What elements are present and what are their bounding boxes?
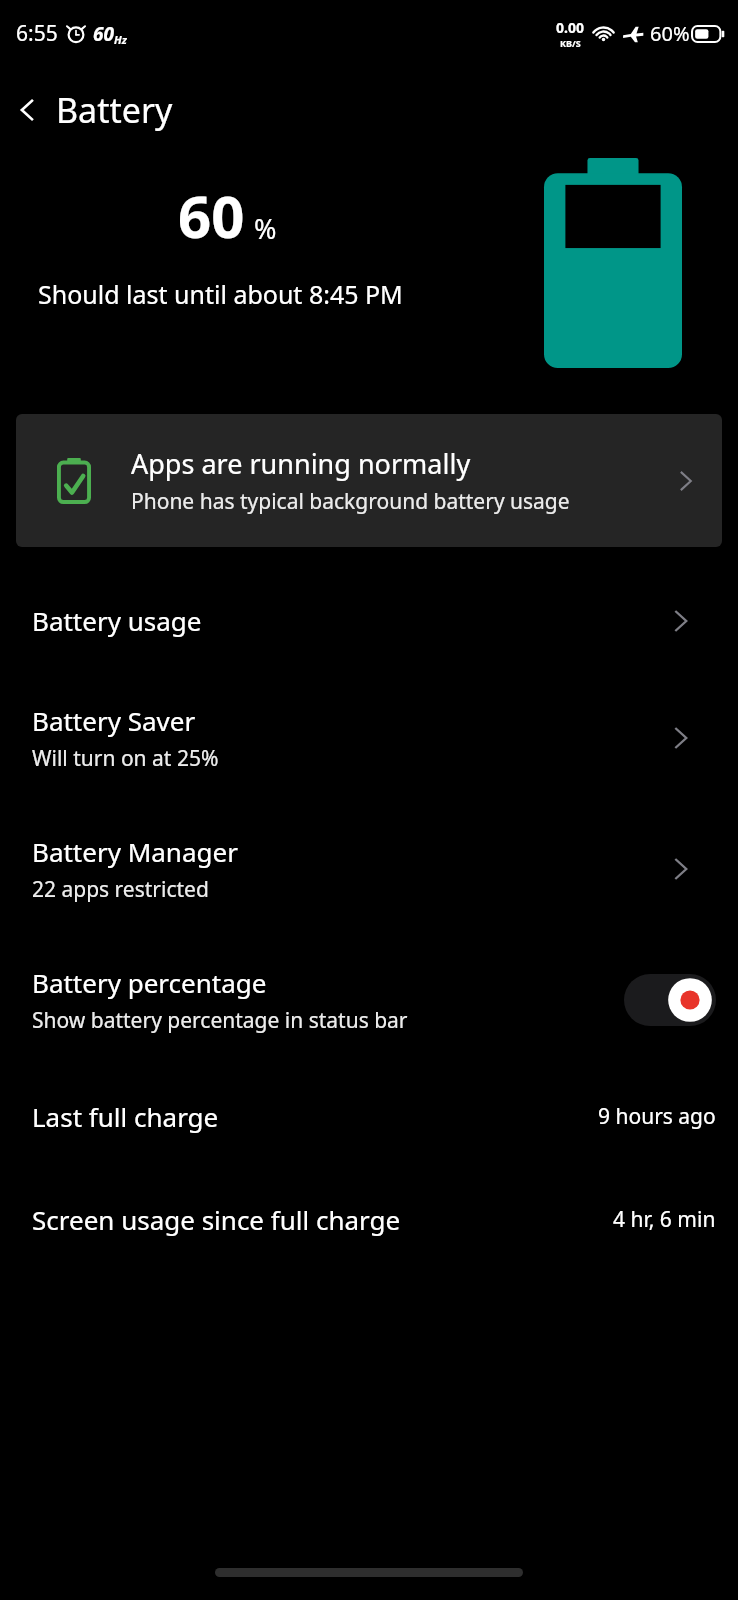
staticText: 60% xyxy=(650,20,690,47)
staticText: Battery percentage xyxy=(32,965,267,1000)
staticText: Hz xyxy=(114,32,127,47)
button[interactable]: Battery percentage toggle xyxy=(624,974,716,1026)
staticText: KB/S xyxy=(560,37,581,49)
staticText: 9 hours ago xyxy=(598,1102,716,1131)
staticText: 22 apps restricted xyxy=(32,875,209,904)
button[interactable]: Back xyxy=(0,82,56,138)
staticText: Last full charge xyxy=(32,1099,219,1134)
staticText: Battery Saver xyxy=(32,703,196,738)
staticText: 60 xyxy=(178,176,245,255)
staticText: Should last until about 8:45 PM xyxy=(38,277,403,311)
staticText: Phone has typical background battery usa… xyxy=(131,487,570,516)
staticText: 4 hr, 6 min xyxy=(613,1205,716,1234)
button[interactable]: Battery usage xyxy=(0,569,738,672)
button[interactable]: Apps are running normally xyxy=(16,414,722,547)
button[interactable]: Battery Manager xyxy=(0,803,738,934)
staticText: 0.00 xyxy=(556,18,584,37)
staticText: 6:55 xyxy=(16,19,58,48)
staticText: Screen usage since full charge xyxy=(32,1202,401,1237)
button[interactable]: Last full charge xyxy=(0,1065,738,1168)
staticText: Apps are running normally xyxy=(131,445,471,482)
staticText: % xyxy=(254,210,277,247)
staticText: Battery xyxy=(56,87,173,133)
staticText: Battery usage xyxy=(32,603,202,638)
staticText: 60 xyxy=(93,21,114,47)
button[interactable]: Battery percentage xyxy=(0,934,738,1065)
button[interactable]: Battery Saver xyxy=(0,672,738,803)
button[interactable]: Screen usage since full charge xyxy=(0,1168,738,1271)
staticText: Show battery percentage in status bar xyxy=(32,1006,408,1035)
staticText: Will turn on at 25% xyxy=(32,744,219,773)
staticText: Battery Manager xyxy=(32,834,238,869)
